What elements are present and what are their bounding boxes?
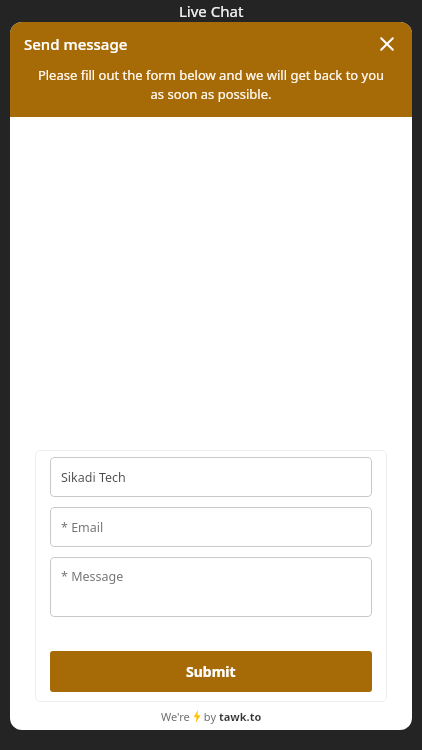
button[interactable]: Sikadi Tech <box>50 457 372 497</box>
button[interactable]: * Message <box>50 557 372 617</box>
button[interactable]: * Email <box>50 507 372 547</box>
staticText: Sikadi Tech <box>61 469 126 486</box>
staticText: by <box>201 709 219 724</box>
button[interactable]: Close <box>372 29 402 59</box>
staticText: Live Chat <box>179 1 244 21</box>
staticText: Send message <box>24 34 128 54</box>
staticText: Please fill out the form below and we wi… <box>32 66 390 103</box>
other: Powered by <box>193 710 201 723</box>
staticText: * Message <box>61 568 124 585</box>
button[interactable]: We're <box>10 702 412 730</box>
staticText: tawk.to <box>219 709 262 724</box>
staticText: We're <box>161 709 193 724</box>
staticText: Submit <box>186 662 236 681</box>
staticText: * Email <box>61 519 104 536</box>
button[interactable]: Submit <box>50 651 372 692</box>
